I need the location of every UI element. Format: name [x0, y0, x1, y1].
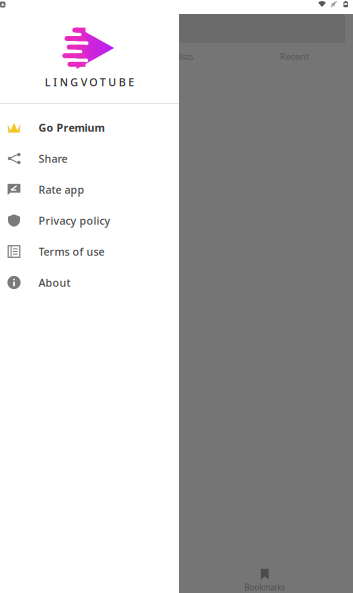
- staticText: LINGVOTUBE: [45, 75, 134, 89]
- button[interactable]: About: [0, 267, 179, 298]
- staticText: Rate app: [38, 182, 84, 197]
- button[interactable]: Playlists: [118, 48, 235, 65]
- button[interactable]: Go Premium: [0, 112, 179, 143]
- button[interactable]: Rate app: [0, 174, 179, 205]
- button[interactable]: Bookmarks: [176, 560, 353, 593]
- button[interactable]: Recent: [235, 48, 353, 65]
- staticText: Go Premium: [38, 120, 104, 135]
- button[interactable]: Share: [0, 143, 179, 174]
- staticText: Terms of use: [38, 244, 104, 259]
- staticText: Share: [38, 151, 67, 166]
- staticText: History: [43, 50, 74, 63]
- staticText: Playlists: [160, 50, 193, 63]
- staticText: Recent: [280, 50, 309, 63]
- button[interactable]: Terms of use: [0, 236, 179, 267]
- staticText: Privacy policy: [38, 213, 110, 228]
- button[interactable]: History: [0, 48, 118, 65]
- button[interactable]: Privacy policy: [0, 205, 179, 236]
- staticText: Bookmarks: [244, 582, 285, 593]
- staticText: About: [38, 275, 70, 290]
